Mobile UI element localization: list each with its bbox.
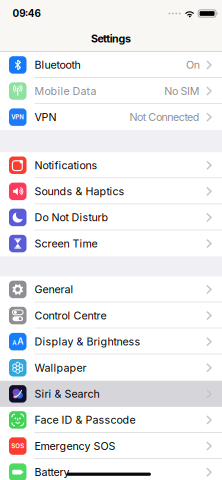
staticText: Settings — [91, 32, 131, 45]
staticText: Bluetooth — [34, 58, 80, 71]
staticText: Wallpaper — [34, 361, 86, 374]
staticText: A — [17, 336, 23, 346]
button[interactable]: Siri & Search — [0, 381, 222, 407]
staticText: No SIM — [164, 85, 200, 97]
staticText: Screen Time — [34, 237, 97, 250]
staticText: Notifications — [34, 159, 97, 172]
staticText: Not Connected — [129, 111, 200, 124]
staticText: Sounds & Haptics — [34, 185, 124, 198]
button[interactable]: VPN — [0, 104, 222, 130]
button[interactable]: Face ID & Passcode — [0, 407, 222, 433]
staticText: Siri & Search — [34, 387, 99, 400]
staticText: VPN — [11, 113, 24, 121]
staticText: Emergency SOS — [34, 440, 115, 452]
staticText: SOS — [11, 442, 24, 450]
staticText: Display & Brightness — [34, 335, 140, 348]
staticText: Mobile Data — [34, 85, 96, 97]
button[interactable]: SOS — [0, 433, 222, 459]
staticText: A — [12, 339, 16, 347]
button[interactable]: Sounds & Haptics — [0, 178, 222, 204]
button[interactable]: Mobile Data — [0, 78, 222, 104]
button[interactable]: General — [0, 276, 222, 302]
staticText: Control Centre — [34, 309, 106, 322]
button[interactable]: A — [0, 329, 222, 355]
staticText: Face ID & Passcode — [34, 413, 135, 426]
staticText: Battery — [34, 466, 69, 479]
button[interactable]: Notifications — [0, 152, 222, 178]
staticText: General — [34, 283, 73, 296]
button[interactable]: Screen Time — [0, 230, 222, 257]
staticText: 09:46 — [12, 7, 40, 19]
button[interactable]: Do Not Disturb — [0, 204, 222, 230]
staticText: On — [186, 58, 200, 71]
staticText: VPN — [34, 111, 56, 124]
button[interactable]: Battery — [0, 459, 222, 480]
button[interactable]: Control Centre — [0, 302, 222, 329]
button[interactable]: Bluetooth — [0, 52, 222, 78]
button[interactable]: Wallpaper — [0, 355, 222, 381]
staticText: Do Not Disturb — [34, 211, 108, 224]
